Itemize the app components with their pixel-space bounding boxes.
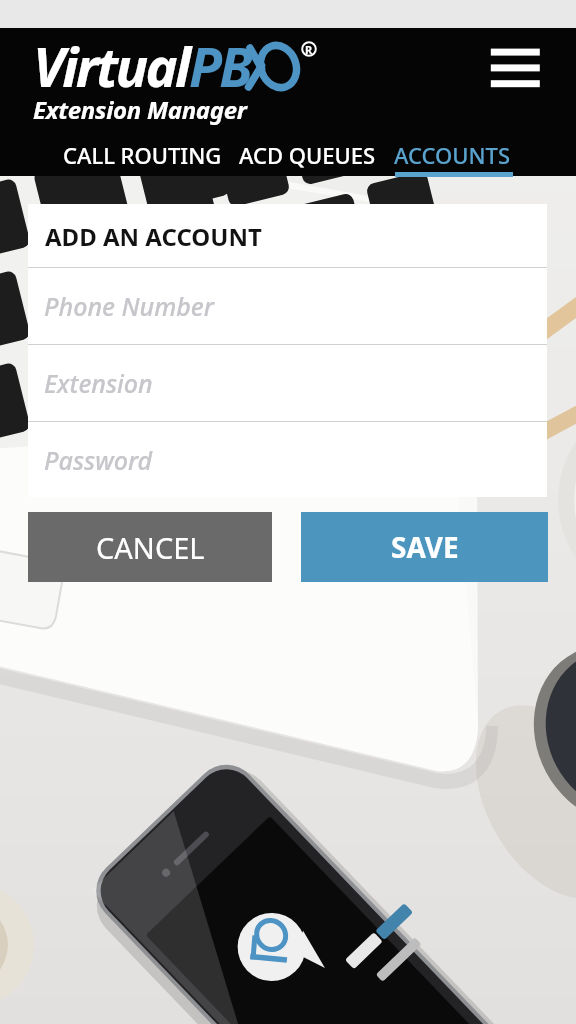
staticText: SAVE: [391, 528, 459, 566]
staticText: R: [305, 42, 313, 57]
staticText: ADD AN ACCOUNT: [45, 220, 262, 253]
button[interactable]: SAVE: [301, 512, 548, 582]
button[interactable]: Extension: [28, 345, 547, 421]
button[interactable]: Phone Number: [28, 268, 547, 344]
staticText: ACD QUEUES: [239, 140, 376, 170]
staticText: Phone Number: [44, 289, 214, 323]
staticText: Extension Manager: [33, 93, 247, 126]
button[interactable]: CANCEL: [28, 512, 272, 582]
button[interactable]: Menu: [481, 40, 549, 96]
button[interactable]: CALL ROUTING: [63, 140, 222, 170]
button[interactable]: ACCOUNTS: [394, 140, 512, 170]
staticText: PB: [189, 29, 251, 103]
staticText: CALL ROUTING: [63, 140, 222, 170]
button[interactable]: ACD QUEUES: [239, 140, 376, 170]
button[interactable]: Password: [28, 422, 547, 497]
staticText: Password: [44, 443, 153, 477]
staticText: CANCEL: [96, 528, 205, 567]
staticText: Virtual: [33, 29, 189, 103]
staticText: ACCOUNTS: [394, 140, 511, 170]
staticText: Extension: [44, 366, 153, 400]
